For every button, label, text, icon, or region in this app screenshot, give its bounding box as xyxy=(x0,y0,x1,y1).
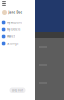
staticText: Settings xyxy=(7,42,18,45)
staticText: Wallet xyxy=(7,35,15,38)
staticText: Log out xyxy=(12,88,23,92)
staticText: My Orders xyxy=(7,28,20,31)
button[interactable]: Wallet xyxy=(0,33,35,40)
button[interactable]: Close menu xyxy=(0,1,7,6)
staticText: My Account xyxy=(7,21,22,24)
button[interactable]: My Account xyxy=(0,19,35,26)
button[interactable]: Log out xyxy=(9,87,25,93)
staticText: Jane Doe xyxy=(8,11,22,14)
button[interactable]: My Orders xyxy=(0,26,35,33)
button[interactable]: Settings xyxy=(0,40,35,47)
button[interactable]: Jane Doe xyxy=(0,10,35,15)
